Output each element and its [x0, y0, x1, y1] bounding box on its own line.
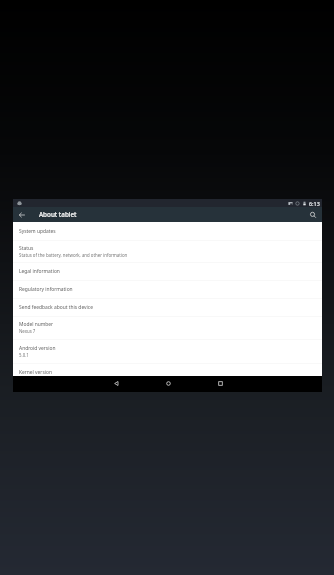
staticText: 6:13: [309, 200, 320, 207]
staticText: Send feedback about this device: [19, 304, 93, 311]
button[interactable]: Model number: [13, 316, 322, 339]
staticText: Status: [19, 245, 34, 252]
button[interactable]: Kernel version: [13, 363, 322, 376]
staticText: Legal information: [19, 268, 60, 275]
button[interactable]: Legal information: [13, 262, 322, 280]
button[interactable]: Android version: [13, 339, 322, 363]
button[interactable]: Recent apps: [211, 375, 229, 391]
button[interactable]: Navigate up: [13, 207, 31, 222]
button[interactable]: Search: [304, 207, 322, 222]
button[interactable]: Home: [159, 375, 177, 391]
staticText: 5.0.1: [19, 352, 29, 358]
staticText: Regulatory information: [19, 286, 73, 293]
staticText: Nexus 7: [19, 328, 36, 334]
staticText: About tablet: [39, 210, 77, 219]
button[interactable]: Status: [13, 240, 322, 262]
staticText: Model number: [19, 321, 54, 328]
button[interactable]: System updates: [13, 222, 322, 240]
button[interactable]: Regulatory information: [13, 280, 322, 298]
staticText: System updates: [19, 228, 56, 235]
staticText: Kernel version: [19, 369, 52, 376]
staticText: Status of the battery, network, and othe…: [19, 252, 128, 258]
button[interactable]: Back: [107, 375, 125, 391]
staticText: Android version: [19, 345, 56, 352]
button[interactable]: Send feedback about this device: [13, 298, 322, 316]
